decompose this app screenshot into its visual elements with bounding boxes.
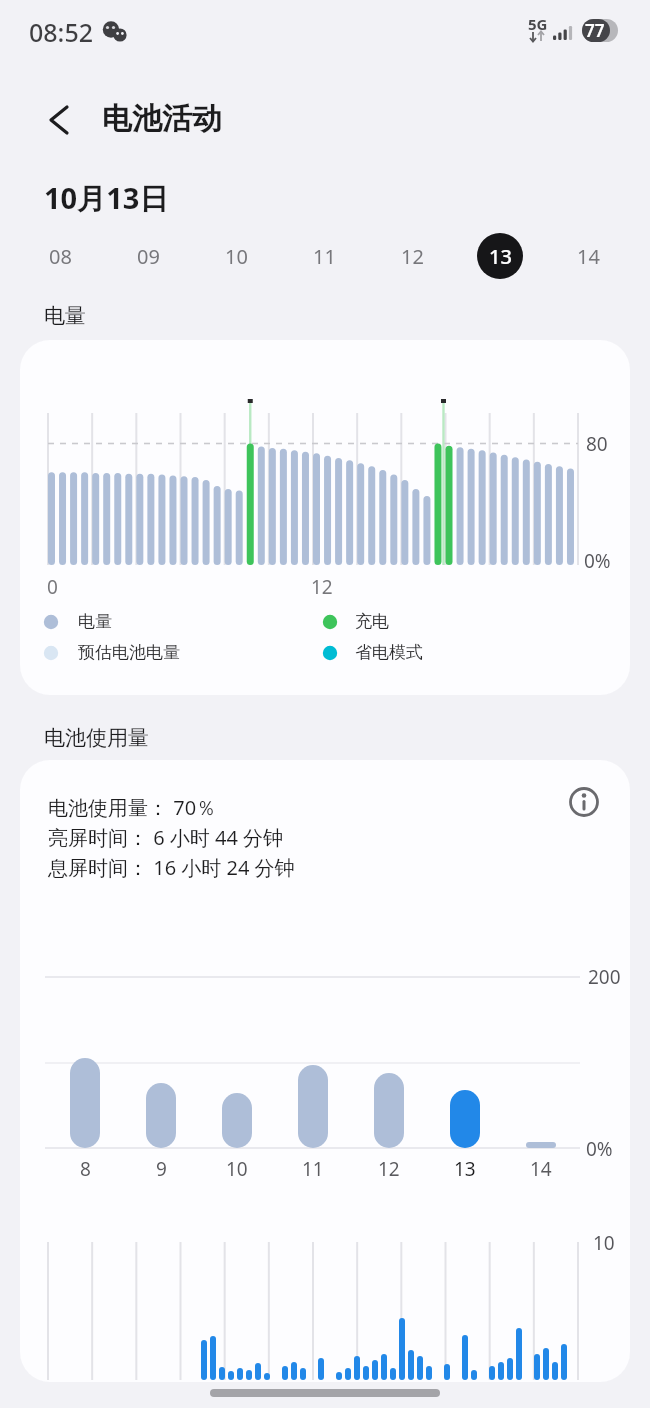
staticText: 11 xyxy=(313,243,336,270)
staticText: 预估电池电量 xyxy=(78,642,180,663)
staticText: 08 xyxy=(49,243,72,270)
staticText: 8 xyxy=(80,1156,91,1182)
button[interactable]: 13 xyxy=(477,233,523,279)
staticText: 亮屏时间： 6 小时 44 分钟 xyxy=(48,824,284,851)
staticText: 10 xyxy=(225,243,248,270)
staticText: 14 xyxy=(577,243,600,270)
staticText: 14 xyxy=(530,1156,552,1182)
staticText: 10 xyxy=(226,1156,248,1182)
staticText: 9 xyxy=(156,1156,167,1182)
staticText: 13 xyxy=(454,1156,476,1182)
staticText: 09 xyxy=(137,243,160,270)
staticText: 12 xyxy=(311,574,333,600)
staticText: 电量 xyxy=(78,611,112,632)
staticText: 12 xyxy=(401,243,424,270)
staticText: 10月13日 xyxy=(44,178,169,218)
button[interactable]: 08 xyxy=(30,236,90,276)
button[interactable] xyxy=(564,782,604,822)
button[interactable]: 11 xyxy=(294,236,354,276)
staticText: 息屏时间： 16 小时 24 分钟 xyxy=(48,854,295,881)
staticText: 13 xyxy=(489,243,512,270)
staticText: 充电 xyxy=(355,611,389,632)
staticText: 08:52 xyxy=(29,15,94,49)
button[interactable]: 12 xyxy=(382,236,442,276)
button[interactable]: 14 xyxy=(558,236,618,276)
staticText: 0 xyxy=(47,574,58,600)
staticText: 0% xyxy=(586,1136,613,1162)
staticText: 11 xyxy=(302,1156,324,1182)
staticText: 5G xyxy=(528,14,548,34)
staticText: 77 xyxy=(585,19,605,42)
staticText: 0% xyxy=(584,548,611,574)
staticText: 10 xyxy=(593,1230,615,1256)
button[interactable]: 09 xyxy=(118,236,178,276)
staticText: 电池使用量： 70％ xyxy=(48,794,217,821)
staticText: 电量 xyxy=(44,303,86,329)
staticText: 电池活动 xyxy=(102,100,222,138)
staticText: 200 xyxy=(588,964,621,990)
staticText: 省电模式 xyxy=(355,642,423,663)
staticText: 80 xyxy=(586,431,608,457)
button[interactable]: 10 xyxy=(206,236,266,276)
staticText: 12 xyxy=(378,1156,400,1182)
button[interactable] xyxy=(36,98,84,142)
staticText: 电池使用量 xyxy=(44,725,149,751)
